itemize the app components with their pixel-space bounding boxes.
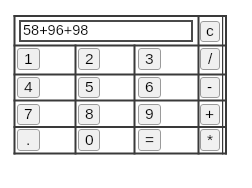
button[interactable]: 1: [17, 48, 40, 70]
staticText: 9: [145, 105, 154, 122]
button[interactable]: -: [200, 77, 220, 98]
staticText: -: [207, 78, 213, 95]
staticText: *: [207, 131, 214, 148]
button[interactable]: c: [200, 21, 220, 42]
button[interactable]: 58+96+98: [19, 20, 193, 42]
staticText: 58+96+98: [23, 22, 89, 38]
staticText: c: [206, 22, 214, 39]
staticText: 1: [24, 50, 33, 67]
button[interactable]: 2: [78, 48, 100, 70]
button[interactable]: *: [200, 129, 220, 151]
button[interactable]: 5: [78, 77, 100, 98]
staticText: .: [26, 131, 31, 148]
staticText: 3: [145, 50, 154, 67]
staticText: 8: [85, 105, 94, 122]
staticText: 0: [85, 131, 94, 148]
button[interactable]: 3: [138, 48, 161, 70]
button[interactable]: =: [138, 129, 161, 151]
button[interactable]: 8: [78, 104, 100, 125]
staticText: 5: [85, 78, 94, 95]
staticText: 6: [145, 78, 154, 95]
staticText: 7: [24, 105, 33, 122]
button[interactable]: 9: [138, 104, 161, 125]
staticText: +: [205, 105, 215, 122]
button[interactable]: 0: [78, 129, 100, 151]
button[interactable]: 7: [17, 104, 40, 125]
button[interactable]: 6: [138, 77, 161, 98]
button[interactable]: +: [200, 104, 220, 125]
staticText: 2: [85, 50, 94, 67]
staticText: 4: [24, 78, 33, 95]
button[interactable]: .: [17, 129, 40, 151]
staticText: =: [145, 131, 155, 148]
button[interactable]: /: [200, 48, 220, 70]
staticText: /: [208, 50, 213, 67]
button[interactable]: 4: [17, 77, 40, 98]
